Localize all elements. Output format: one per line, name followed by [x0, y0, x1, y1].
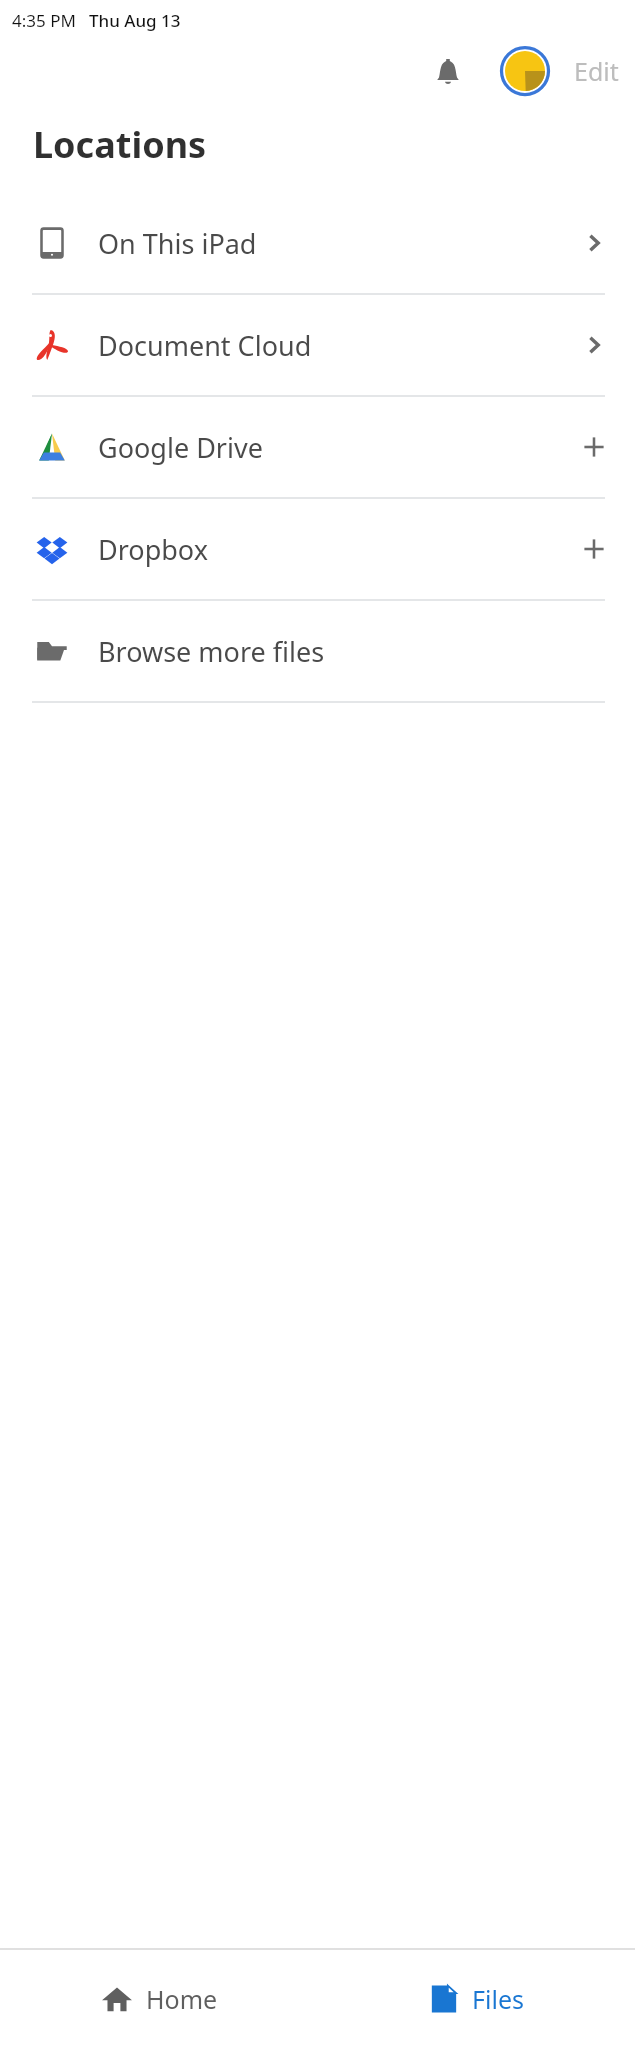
staticText: Files [472, 1982, 524, 2016]
other: On This iPad [37, 228, 67, 258]
button[interactable]: Dropbox [0, 499, 635, 599]
staticText: Dropbox [98, 531, 579, 568]
staticText: Google Drive [98, 429, 579, 466]
button[interactable]: Home [0, 1950, 317, 2048]
button[interactable]: Files [317, 1950, 635, 2048]
button[interactable]: Document Cloud [0, 295, 635, 395]
button[interactable]: Edit [566, 48, 627, 94]
button[interactable]: Notifications [420, 43, 476, 99]
staticText: Edit [574, 54, 619, 88]
other: Dropbox [36, 533, 68, 565]
staticText: Document Cloud [98, 327, 579, 364]
button[interactable]: On This iPad [0, 193, 635, 293]
staticText: Browse more files [98, 633, 579, 670]
staticText: Locations [33, 120, 207, 169]
button[interactable]: Account [498, 44, 552, 98]
button[interactable]: Browse more files [0, 601, 635, 701]
other: Google Drive [36, 431, 68, 463]
staticText: Home [146, 1982, 218, 2016]
staticText: On This iPad [98, 225, 579, 262]
button[interactable]: Google Drive [0, 397, 635, 497]
other: Document Cloud [35, 328, 69, 362]
staticText: 4:35 PM [12, 9, 76, 32]
other: Browse more files [36, 635, 68, 667]
staticText: Thu Aug 13 [89, 9, 181, 32]
